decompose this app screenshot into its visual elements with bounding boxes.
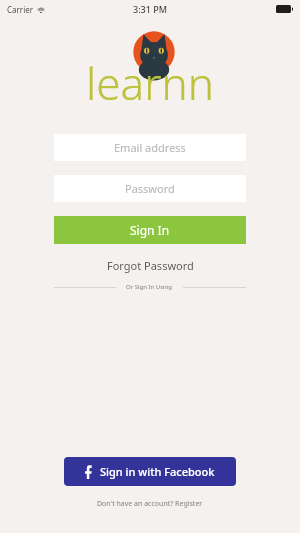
staticText: Carrier	[7, 4, 34, 15]
button[interactable]: Password	[54, 175, 246, 202]
button[interactable]: Email address	[54, 134, 246, 161]
staticText: Password	[125, 181, 175, 196]
staticText: Or Sign In Using	[126, 283, 173, 291]
staticText: learnn	[86, 53, 214, 113]
staticText: Forgot Password	[107, 258, 194, 273]
button[interactable]: Sign in with Facebook	[64, 457, 236, 486]
staticText: 3:31 PM	[133, 3, 167, 15]
staticText: Sign In	[130, 222, 170, 238]
staticText: Sign in with Facebook	[100, 464, 215, 479]
button[interactable]: Forgot Password	[54, 258, 246, 273]
button[interactable]: Sign In	[54, 216, 246, 244]
button[interactable]: Don't have an account? Register	[97, 499, 203, 509]
staticText: Don't have an account? Register	[97, 499, 203, 509]
staticText: Email address	[114, 140, 186, 155]
